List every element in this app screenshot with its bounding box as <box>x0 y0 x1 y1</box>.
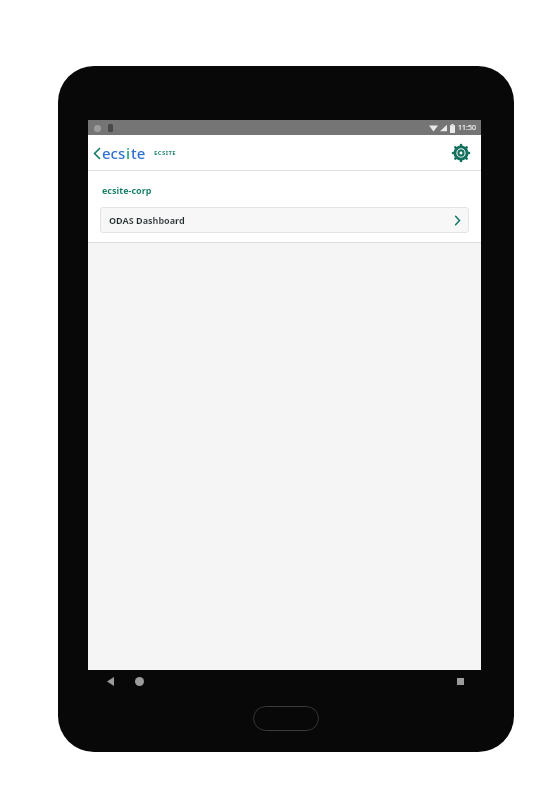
button[interactable]: Settings <box>448 140 474 166</box>
button[interactable]: Home <box>130 672 149 691</box>
staticText: ECSITE <box>154 149 177 157</box>
other: Back <box>94 148 100 159</box>
button[interactable]: Back <box>88 138 183 168</box>
button[interactable]: Recent apps <box>451 672 470 691</box>
staticText: ODAS Dashboard <box>109 214 185 226</box>
button[interactable]: Back <box>101 672 120 691</box>
button[interactable]: Home button <box>253 706 319 731</box>
button[interactable]: ODAS Dashboard <box>100 207 469 233</box>
staticText: te <box>131 143 146 163</box>
staticText: 11:50 <box>458 123 476 133</box>
staticText: ecs <box>102 143 126 163</box>
staticText: i <box>126 143 131 163</box>
staticText: ecsite-corp <box>102 184 152 196</box>
